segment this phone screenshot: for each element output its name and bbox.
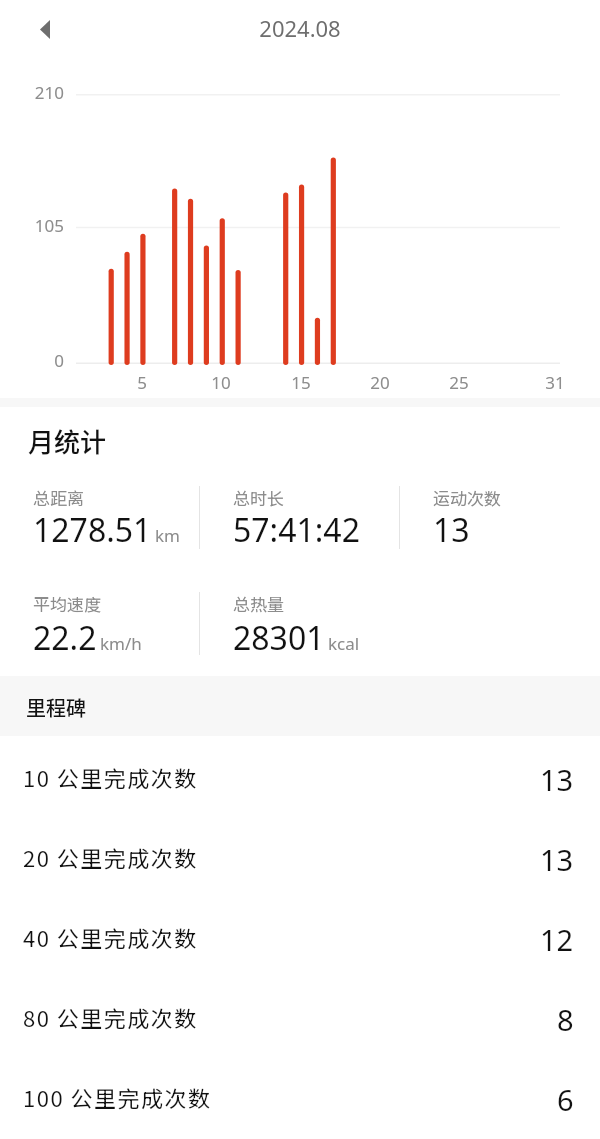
staticText: 里程碑 [26,693,86,722]
staticText: 平均速度 [33,591,101,616]
button[interactable]: Back [25,9,65,49]
staticText: 28301 [233,616,325,660]
button[interactable]: 80 公里完成次数 [0,980,600,1060]
staticText: 100 公里完成次数 [23,1081,212,1113]
staticText: 13 [540,760,574,799]
staticText: 105 [22,214,64,237]
staticText: 6 [557,1080,574,1119]
staticText: 22.2 [33,616,97,660]
staticText: 1278.51 [33,508,152,552]
staticText: 31 [530,371,580,394]
staticText: 20 公里完成次数 [23,841,198,873]
staticText: 月统计 [28,422,107,460]
staticText: km [155,524,180,547]
staticText: 8 [557,1000,574,1039]
staticText: kcal [328,632,360,655]
staticText: 13 [433,508,470,552]
staticText: 10 [196,371,246,394]
button[interactable]: 20 公里完成次数 [0,820,600,900]
staticText: 20 [355,371,405,394]
button[interactable]: 100 公里完成次数 [0,1060,600,1139]
button[interactable]: 40 公里完成次数 [0,900,600,980]
staticText: 5 [117,371,167,394]
staticText: 2024.08 [0,13,600,43]
staticText: 57:41:42 [233,508,360,552]
staticText: 25 [434,371,484,394]
staticText: 总时长 [233,485,284,510]
staticText: 总热量 [233,591,284,616]
staticText: km/h [100,632,142,655]
staticText: 12 [540,920,574,959]
staticText: 13 [540,840,574,879]
staticText: 总距离 [33,485,84,510]
staticText: 运动次数 [433,485,501,510]
staticText: 15 [276,371,326,394]
staticText: 40 公里完成次数 [23,921,198,953]
staticText: 210 [22,81,64,104]
staticText: 0 [22,349,64,372]
staticText: 80 公里完成次数 [23,1001,198,1033]
button[interactable]: 10 公里完成次数 [0,740,600,820]
staticText: 10 公里完成次数 [23,761,198,793]
